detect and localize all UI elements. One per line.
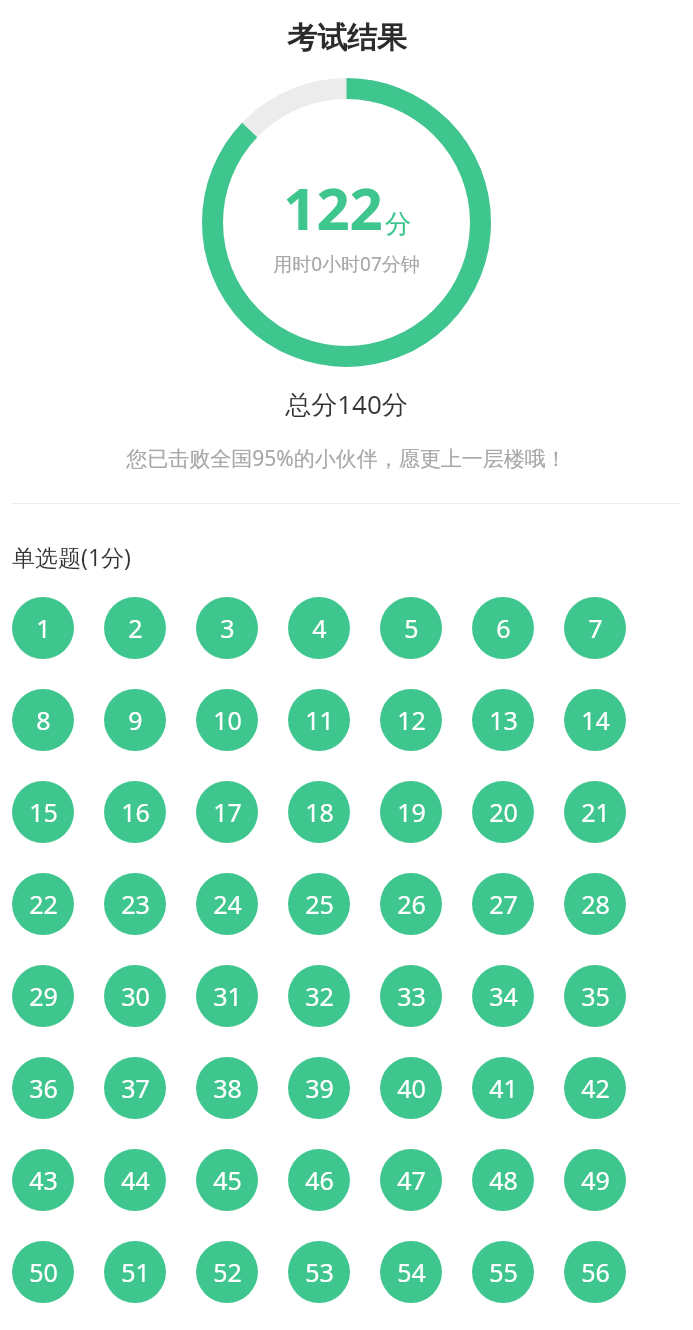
staticText: 45 xyxy=(213,1163,242,1197)
button[interactable]: 第 28 题 xyxy=(564,873,626,935)
staticText: 22 xyxy=(29,887,58,921)
staticText: 33 xyxy=(397,979,426,1013)
button[interactable]: 第 39 题 xyxy=(288,1057,350,1119)
button[interactable]: 第 26 题 xyxy=(380,873,442,935)
staticText: 6 xyxy=(496,611,511,645)
staticText: 26 xyxy=(397,887,426,921)
staticText: 分 xyxy=(385,208,411,241)
button[interactable]: 第 53 题 xyxy=(288,1241,350,1303)
staticText: 44 xyxy=(121,1163,150,1197)
button[interactable]: 第 52 题 xyxy=(196,1241,258,1303)
staticText: 36 xyxy=(29,1071,58,1105)
staticText: 17 xyxy=(213,795,242,829)
button[interactable]: 第 24 题 xyxy=(196,873,258,935)
button[interactable]: 第 22 题 xyxy=(12,873,74,935)
button[interactable]: 第 9 题 xyxy=(104,689,166,751)
button[interactable]: 第 56 题 xyxy=(564,1241,626,1303)
button[interactable]: 第 40 题 xyxy=(380,1057,442,1119)
staticText: 47 xyxy=(397,1163,426,1197)
button[interactable]: 第 48 题 xyxy=(472,1149,534,1211)
button[interactable]: 第 7 题 xyxy=(564,597,626,659)
staticText: 考试结果 xyxy=(287,19,407,57)
staticText: 19 xyxy=(397,795,426,829)
staticText: 48 xyxy=(489,1163,518,1197)
button[interactable]: 第 33 题 xyxy=(380,965,442,1027)
button[interactable]: 第 3 题 xyxy=(196,597,258,659)
button[interactable]: 第 21 题 xyxy=(564,781,626,843)
staticText: 39 xyxy=(305,1071,334,1105)
button[interactable]: 第 51 题 xyxy=(104,1241,166,1303)
button[interactable]: 第 31 题 xyxy=(196,965,258,1027)
button[interactable]: 第 41 题 xyxy=(472,1057,534,1119)
button[interactable]: 第 50 题 xyxy=(12,1241,74,1303)
staticText: 您已击败全国95%的小伙伴，愿更上一层楼哦！ xyxy=(126,444,567,473)
staticText: 21 xyxy=(581,795,610,829)
button[interactable]: 第 23 题 xyxy=(104,873,166,935)
staticText: 1 xyxy=(36,611,51,645)
staticText: 18 xyxy=(305,795,334,829)
staticText: 13 xyxy=(489,703,518,737)
staticText: 55 xyxy=(489,1255,518,1289)
staticText: 用时0小时07分钟 xyxy=(273,251,420,277)
staticText: 10 xyxy=(213,703,242,737)
button[interactable]: 第 13 题 xyxy=(472,689,534,751)
button[interactable]: 第 35 题 xyxy=(564,965,626,1027)
button[interactable]: 第 30 题 xyxy=(104,965,166,1027)
staticText: 54 xyxy=(397,1255,426,1289)
button[interactable]: 第 42 题 xyxy=(564,1057,626,1119)
button[interactable]: 第 29 题 xyxy=(12,965,74,1027)
staticText: 41 xyxy=(489,1071,518,1105)
staticText: 4 xyxy=(312,611,327,645)
button[interactable]: 第 37 题 xyxy=(104,1057,166,1119)
staticText: 12 xyxy=(397,703,426,737)
button[interactable]: 第 55 题 xyxy=(472,1241,534,1303)
button[interactable]: 第 47 题 xyxy=(380,1149,442,1211)
button[interactable]: 第 27 题 xyxy=(472,873,534,935)
button[interactable]: 第 6 题 xyxy=(472,597,534,659)
staticText: 35 xyxy=(581,979,610,1013)
staticText: 34 xyxy=(489,979,518,1013)
staticText: 25 xyxy=(305,887,334,921)
button[interactable]: 第 32 题 xyxy=(288,965,350,1027)
button[interactable]: 第 8 题 xyxy=(12,689,74,751)
button[interactable]: 第 36 题 xyxy=(12,1057,74,1119)
button[interactable]: 第 15 题 xyxy=(12,781,74,843)
button[interactable]: 第 43 题 xyxy=(12,1149,74,1211)
button[interactable]: 第 4 题 xyxy=(288,597,350,659)
button[interactable]: 第 10 题 xyxy=(196,689,258,751)
button[interactable]: 第 2 题 xyxy=(104,597,166,659)
button[interactable]: 第 17 题 xyxy=(196,781,258,843)
button[interactable]: 第 14 题 xyxy=(564,689,626,751)
staticText: 122 xyxy=(283,168,383,247)
staticText: 15 xyxy=(29,795,58,829)
button[interactable]: 第 11 题 xyxy=(288,689,350,751)
button[interactable]: 第 16 题 xyxy=(104,781,166,843)
staticText: 42 xyxy=(581,1071,610,1105)
button[interactable]: 第 1 题 xyxy=(12,597,74,659)
staticText: 5 xyxy=(404,611,419,645)
staticText: 43 xyxy=(29,1163,58,1197)
staticText: 24 xyxy=(213,887,242,921)
staticText: 14 xyxy=(581,703,610,737)
staticText: 53 xyxy=(305,1255,334,1289)
staticText: 23 xyxy=(121,887,150,921)
button[interactable]: 第 5 题 xyxy=(380,597,442,659)
button[interactable]: 第 25 题 xyxy=(288,873,350,935)
button[interactable]: 第 45 题 xyxy=(196,1149,258,1211)
staticText: 51 xyxy=(121,1255,150,1289)
staticText: 3 xyxy=(220,611,235,645)
staticText: 11 xyxy=(305,703,334,737)
button[interactable]: 第 20 题 xyxy=(472,781,534,843)
button[interactable]: 第 54 题 xyxy=(380,1241,442,1303)
button[interactable]: 第 44 题 xyxy=(104,1149,166,1211)
button[interactable]: 第 38 题 xyxy=(196,1057,258,1119)
staticText: 单选题(1分) xyxy=(12,541,131,572)
staticText: 32 xyxy=(305,979,334,1013)
staticText: 46 xyxy=(305,1163,334,1197)
button[interactable]: 第 19 题 xyxy=(380,781,442,843)
button[interactable]: 第 34 题 xyxy=(472,965,534,1027)
button[interactable]: 第 12 题 xyxy=(380,689,442,751)
button[interactable]: 第 18 题 xyxy=(288,781,350,843)
button[interactable]: 第 49 题 xyxy=(564,1149,626,1211)
button[interactable]: 第 46 题 xyxy=(288,1149,350,1211)
